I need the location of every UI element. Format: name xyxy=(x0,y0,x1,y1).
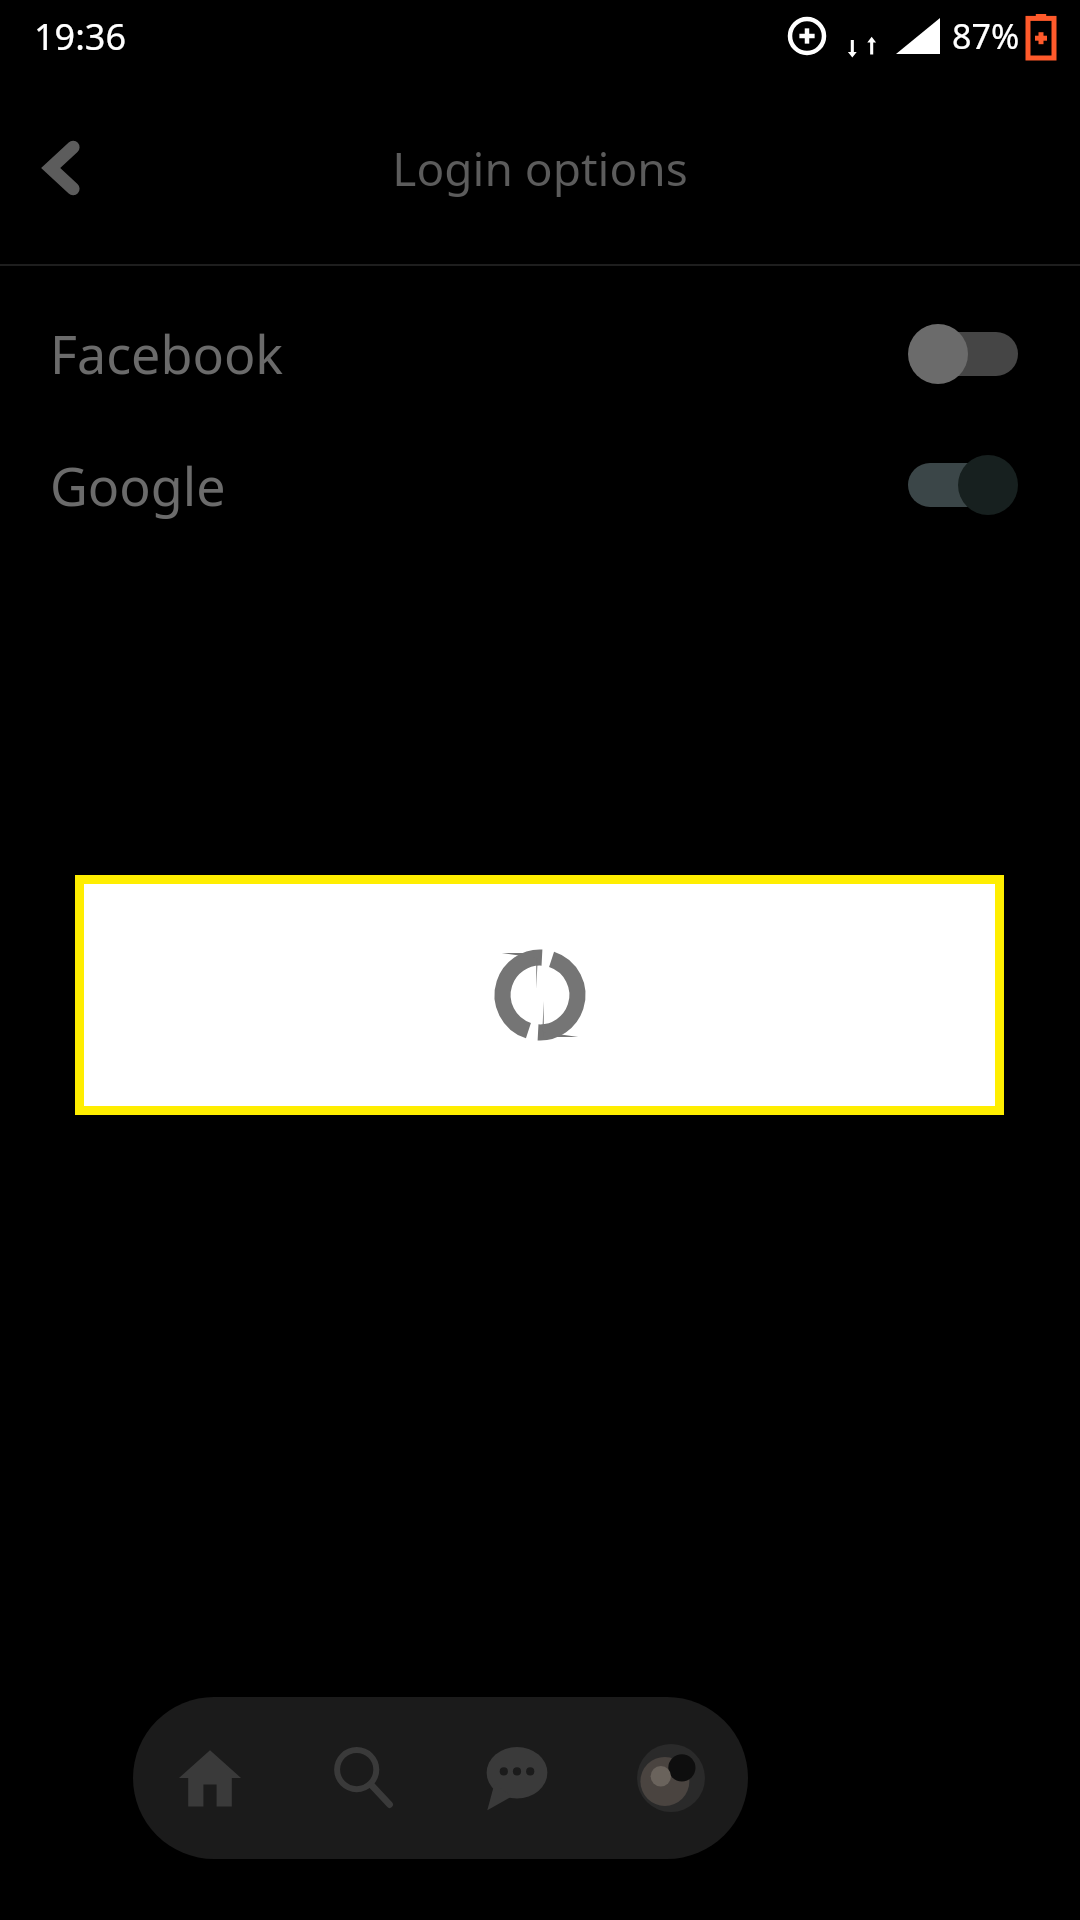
button[interactable]: Profile xyxy=(594,1697,748,1859)
button[interactable]: Home xyxy=(133,1697,286,1859)
staticText: 87% xyxy=(952,13,1020,59)
staticText: Facebook xyxy=(50,318,284,389)
button[interactable]: Messages xyxy=(440,1697,594,1859)
button[interactable]: Sync xyxy=(84,884,995,1106)
button[interactable]: Search xyxy=(286,1697,440,1859)
staticText: 19:36 xyxy=(34,12,127,61)
button[interactable]: Google xyxy=(0,410,1080,560)
staticText: Login options xyxy=(392,137,688,200)
button[interactable]: Facebook xyxy=(0,266,1080,441)
staticText: Google xyxy=(50,450,226,521)
button[interactable]: Back xyxy=(8,113,118,223)
